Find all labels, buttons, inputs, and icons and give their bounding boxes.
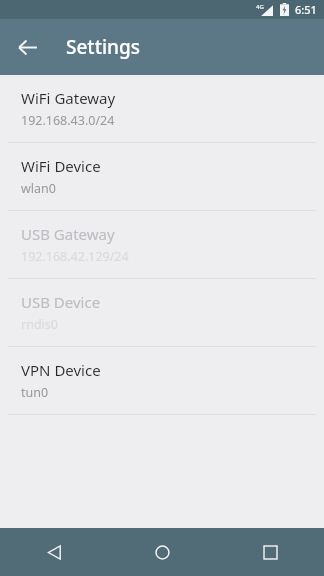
staticText: tun0 <box>21 384 49 401</box>
button[interactable]: WiFi Device <box>0 143 324 210</box>
staticText: USB Gateway <box>21 224 115 244</box>
button[interactable]: Recent apps <box>216 528 324 576</box>
staticText: 192.168.42.129/24 <box>21 248 129 265</box>
button[interactable]: USB Gateway <box>0 211 324 278</box>
button[interactable]: VPN Device <box>0 347 324 414</box>
button[interactable]: Back <box>0 528 108 576</box>
button[interactable]: WiFi Gateway <box>0 75 324 142</box>
staticText: WiFi Gateway <box>21 88 116 108</box>
button[interactable]: Home <box>108 528 216 576</box>
staticText: 6:51 <box>295 2 317 17</box>
button[interactable]: Back <box>6 26 48 68</box>
button[interactable]: USB Device <box>0 279 324 346</box>
staticText: rndis0 <box>21 316 58 333</box>
staticText: wlan0 <box>21 180 56 197</box>
staticText: WiFi Device <box>21 156 101 176</box>
staticText: 4G <box>256 3 264 11</box>
staticText: USB Device <box>21 292 101 312</box>
staticText: Settings <box>66 34 140 60</box>
staticText: VPN Device <box>21 360 101 380</box>
staticText: 192.168.43.0/24 <box>21 112 115 129</box>
